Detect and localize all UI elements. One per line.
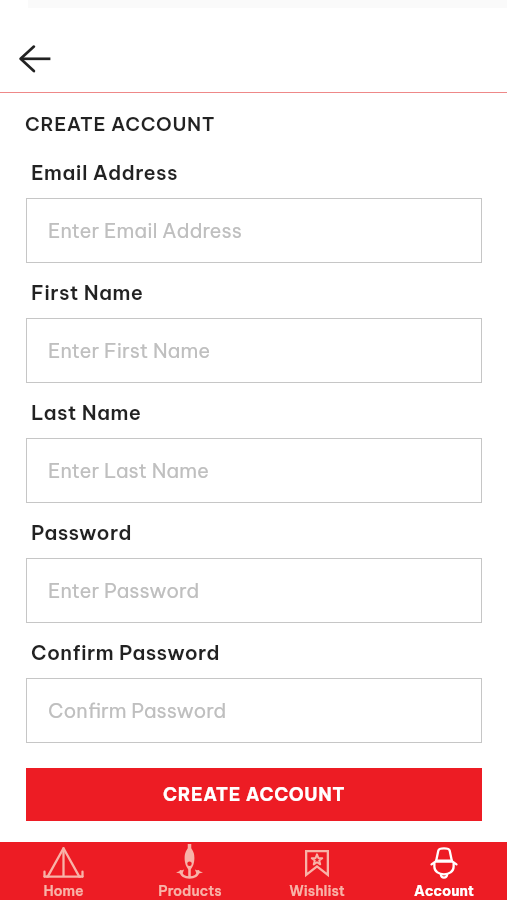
button[interactable]: CREATE ACCOUNT — [26, 768, 482, 821]
staticText: First Name — [31, 280, 144, 305]
button[interactable]: Products — [126, 842, 253, 900]
staticText: Last Name — [31, 400, 142, 425]
button[interactable]: Confirm Password — [26, 678, 482, 743]
staticText: Password — [31, 520, 132, 545]
button[interactable]: Enter Password — [26, 558, 482, 623]
staticText: Email Address — [31, 160, 178, 185]
button[interactable]: Enter Last Name — [26, 438, 482, 503]
button[interactable]: Home — [0, 842, 126, 900]
staticText: Enter First Name — [48, 338, 211, 363]
staticText: CREATE ACCOUNT — [163, 783, 346, 806]
staticText: Account — [414, 882, 474, 900]
staticText: Enter Email Address — [48, 218, 242, 243]
button[interactable]: Back — [11, 34, 61, 84]
staticText: Wishlist — [289, 882, 345, 900]
button[interactable]: Account — [380, 842, 507, 900]
staticText: Confirm Password — [31, 640, 220, 665]
button[interactable]: Enter First Name — [26, 318, 482, 383]
button[interactable]: Wishlist — [253, 842, 380, 900]
staticText: Products — [158, 882, 222, 900]
staticText: Confirm Password — [48, 698, 227, 723]
button[interactable]: Enter Email Address — [26, 198, 482, 263]
staticText: Home — [43, 882, 84, 900]
staticText: Enter Password — [48, 578, 200, 603]
staticText: Enter Last Name — [48, 458, 209, 483]
staticText: CREATE ACCOUNT — [25, 112, 216, 136]
